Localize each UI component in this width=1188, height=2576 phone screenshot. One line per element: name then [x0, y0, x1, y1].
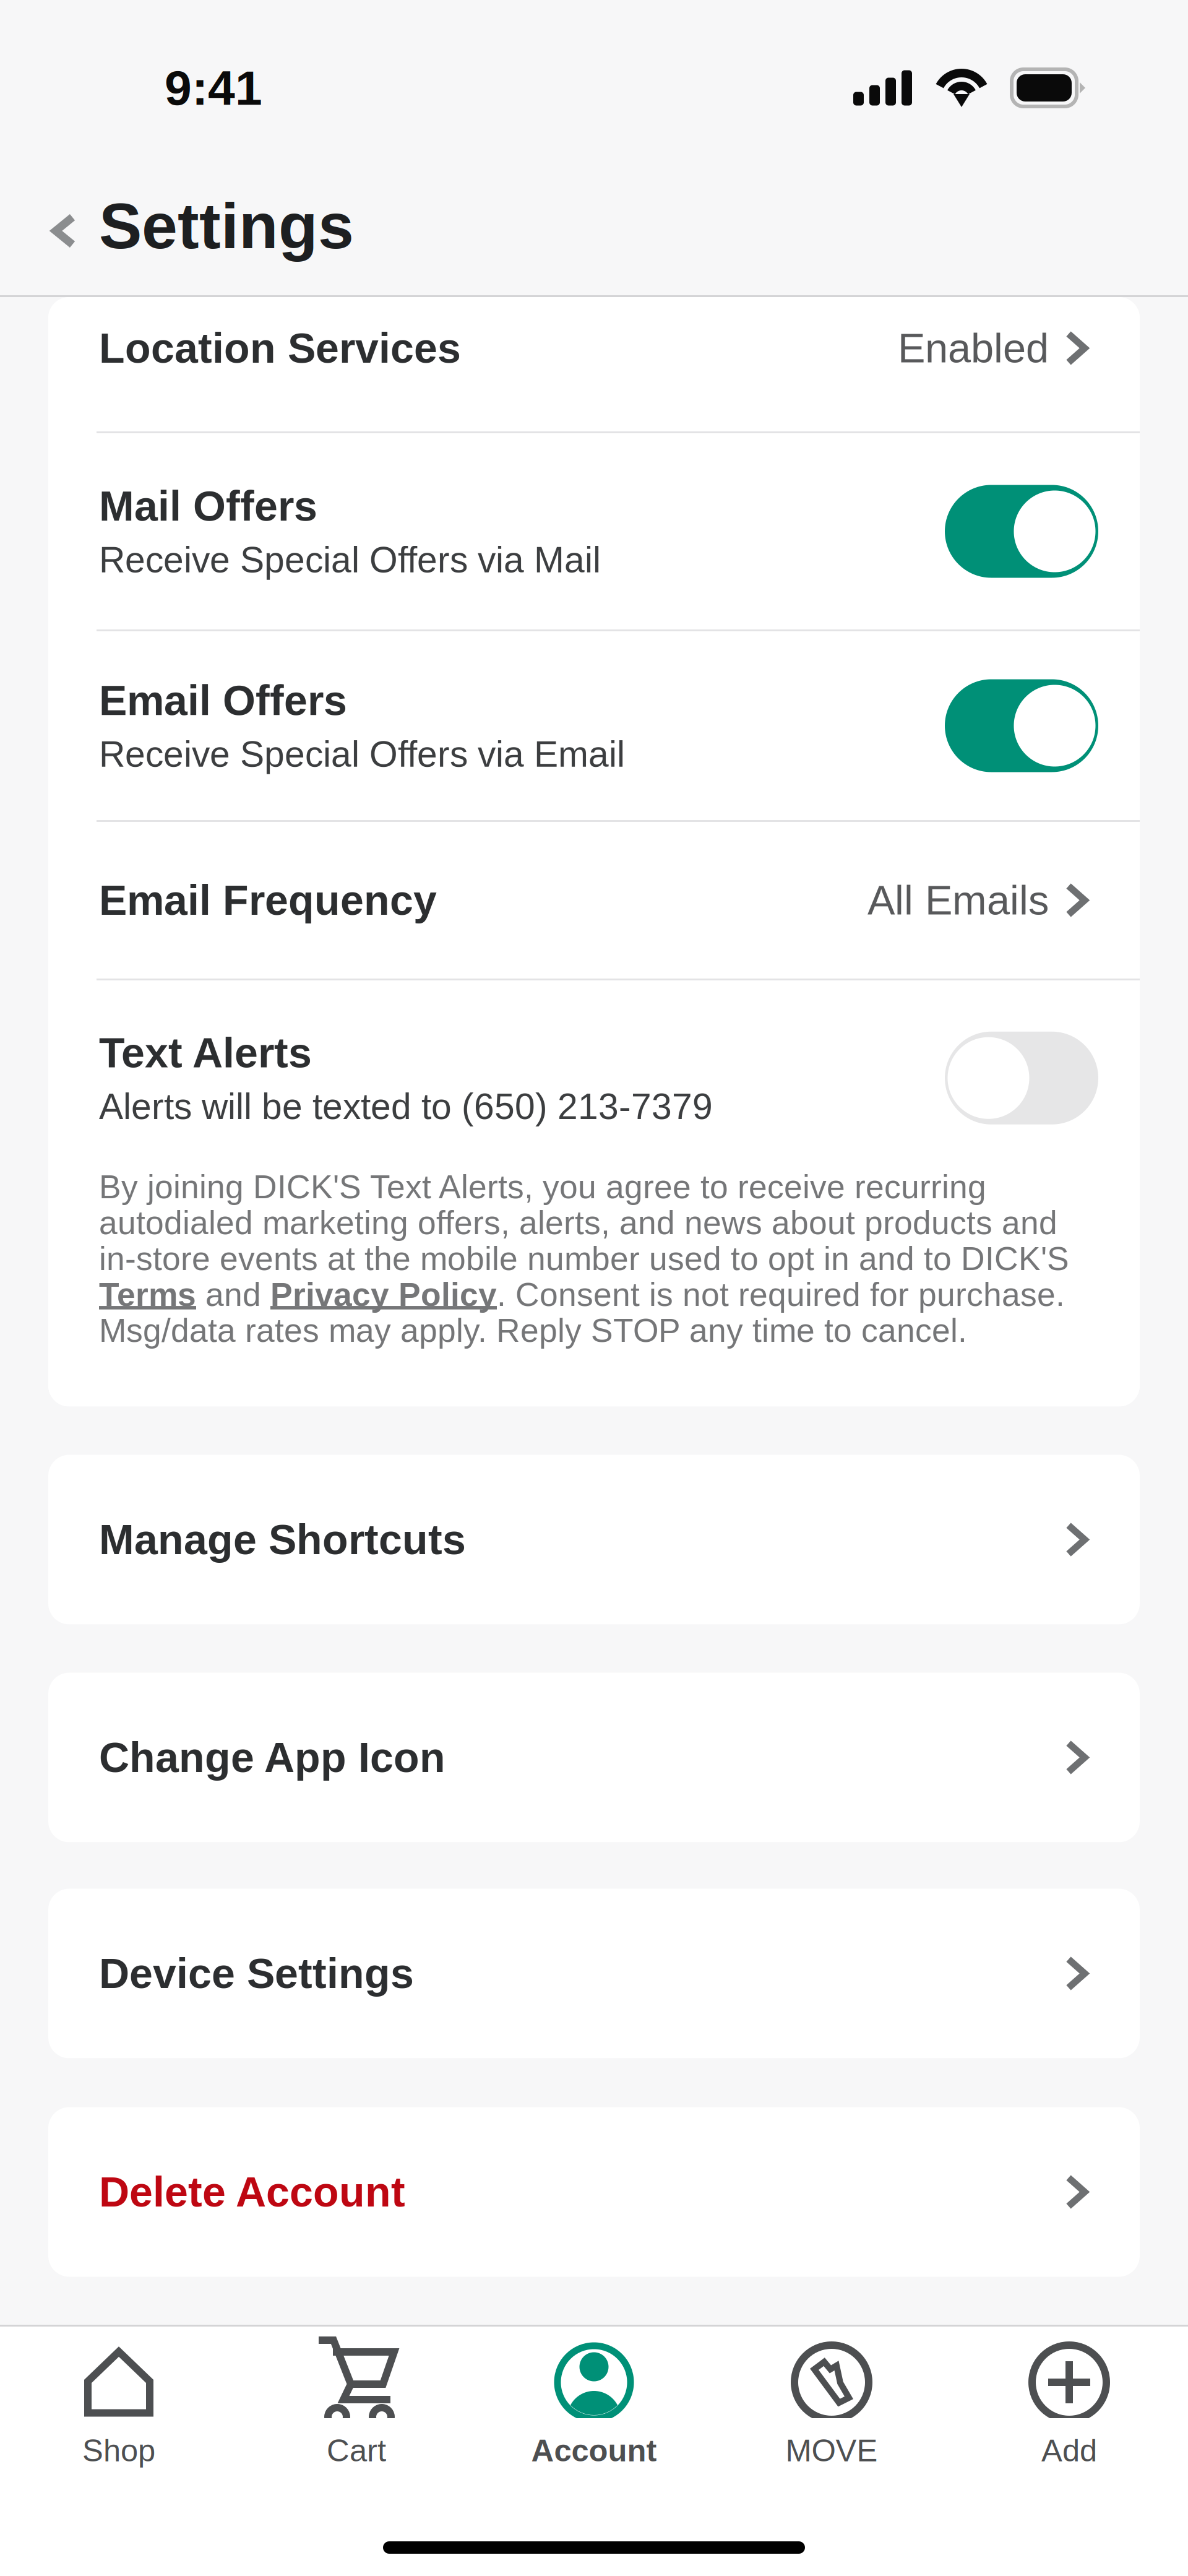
button[interactable]: Shop [0, 2327, 238, 2489]
staticText: in-store events at the mobile number use… [99, 1240, 1069, 1277]
staticText: Add [1041, 2433, 1097, 2468]
staticText: Email Frequency [99, 877, 437, 924]
staticText: Terms and Privacy Policy. Consent is not… [99, 1276, 1065, 1313]
staticText: Receive Special Offers via Mail [99, 540, 601, 580]
staticText: Cart [327, 2433, 386, 2468]
button[interactable]: Device Settings [48, 1889, 1140, 2058]
staticText: MOVE [786, 2433, 878, 2468]
staticText: Settings [99, 190, 354, 262]
button[interactable]: Delete Account [48, 2107, 1140, 2277]
button[interactable]: Location Services [48, 269, 1140, 427]
staticText: Text Alerts [99, 1029, 312, 1076]
staticText: Change App Icon [99, 1734, 445, 1781]
staticText: 9:41 [165, 61, 262, 115]
button[interactable]: Mail Offers [48, 433, 1140, 629]
staticText: Mail Offers [99, 483, 317, 530]
staticText: Email Offers [99, 677, 347, 724]
button[interactable]: Back [0, 179, 99, 272]
button[interactable]: Email Frequency [48, 822, 1140, 979]
staticText: autodialed marketing offers, alerts, and… [99, 1204, 1057, 1241]
staticText: All Emails [867, 877, 1049, 923]
staticText: Device Settings [99, 1950, 414, 1997]
button[interactable]: Account [475, 2327, 713, 2489]
button[interactable]: Cart [238, 2327, 475, 2489]
staticText: Msg/data rates may apply. Reply STOP any… [99, 1312, 967, 1349]
button[interactable]: Change App Icon [48, 1673, 1140, 1842]
staticText: Manage Shortcuts [99, 1516, 466, 1563]
staticText: Enabled [898, 325, 1049, 371]
staticText: Delete Account [99, 2168, 405, 2215]
button[interactable]: Email Offers [48, 631, 1140, 820]
button[interactable]: MOVE [713, 2327, 950, 2489]
staticText: By joining DICK'S Text Alerts, you agree… [99, 1168, 986, 1205]
button[interactable]: Manage Shortcuts [48, 1455, 1140, 1624]
staticText: Shop [82, 2433, 155, 2468]
staticText: Location Services [99, 325, 461, 372]
button[interactable]: Add [950, 2327, 1188, 2489]
staticText: Account [531, 2433, 657, 2468]
staticText: Receive Special Offers via Email [99, 734, 625, 774]
staticText: Alerts will be texted to (650) 213-7379 [99, 1086, 713, 1127]
